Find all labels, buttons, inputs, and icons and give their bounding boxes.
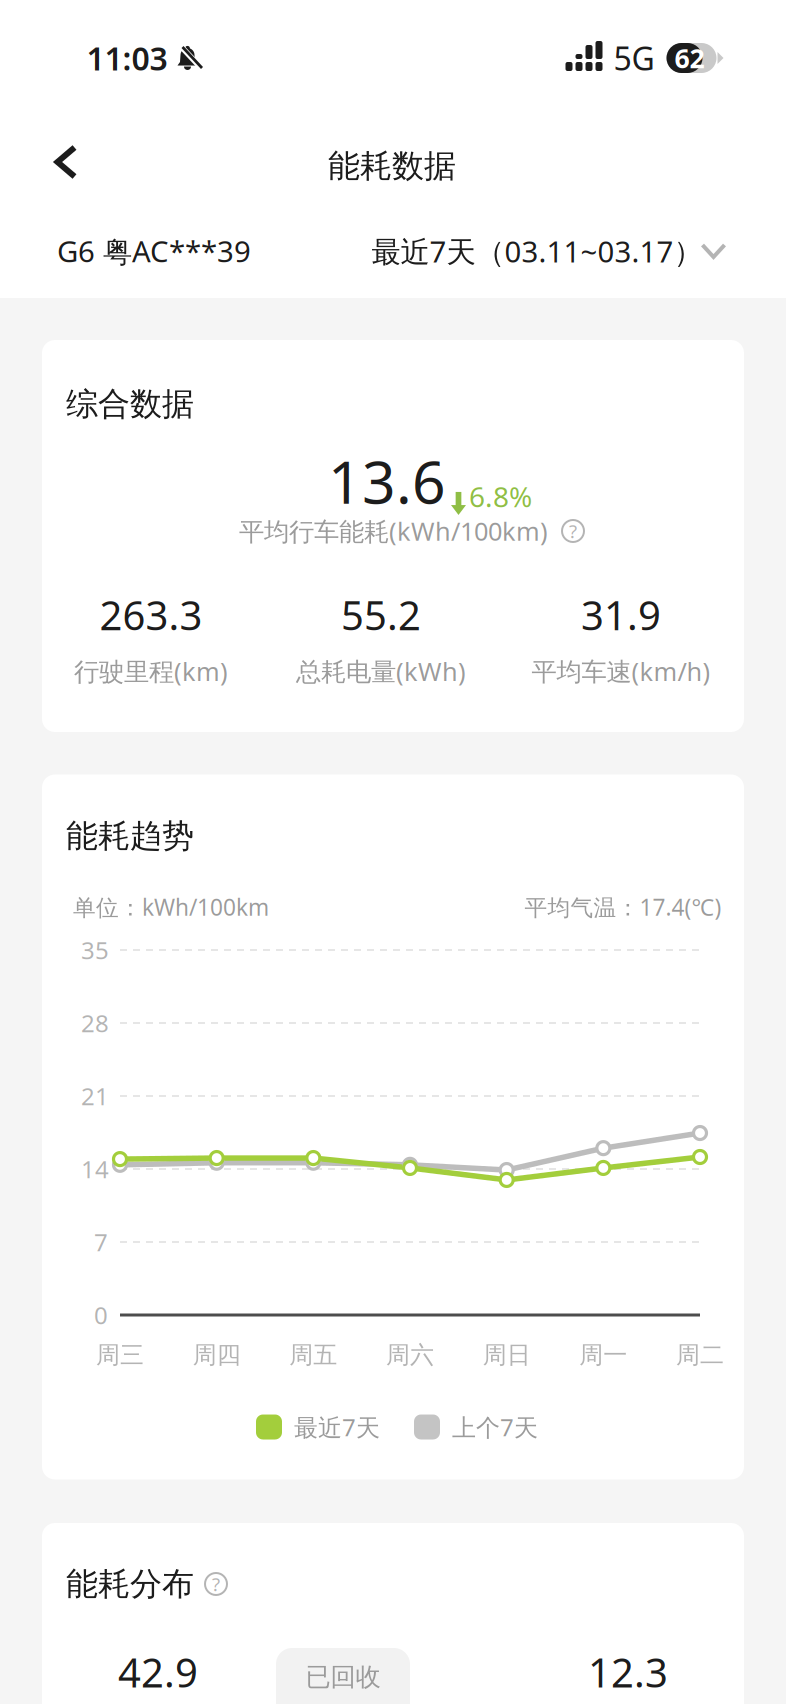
staticText: 11:03: [86, 37, 167, 79]
staticText: 263.3: [99, 588, 202, 641]
button[interactable]: 最近7天: [256, 1403, 380, 1451]
staticText: 21: [81, 1080, 109, 1112]
staticText: 0: [94, 1299, 108, 1331]
button[interactable]: 最近7天（03.11~03.17）: [371, 207, 724, 294]
staticText: 周日: [483, 1340, 531, 1370]
staticText: 42.9: [118, 1645, 198, 1698]
staticText: 12.3: [588, 1645, 668, 1698]
staticText: 平均气温：17.4(℃): [524, 892, 721, 922]
staticText: 能耗趋势: [66, 816, 194, 856]
staticText: 62: [674, 40, 704, 76]
button[interactable]: 关于平均行车能耗: [557, 515, 589, 547]
staticText: 行驶里程(km): [74, 654, 228, 688]
staticText: 上个7天: [452, 1411, 538, 1443]
staticText: 周二: [676, 1340, 724, 1370]
button[interactable]: 返回: [20, 118, 112, 206]
staticText: 31.9: [581, 588, 661, 641]
staticText: G6 粤AC***39: [57, 231, 251, 270]
staticText: 能耗数据: [328, 146, 456, 186]
staticText: 周五: [289, 1340, 337, 1370]
staticText: 6.8%: [469, 478, 532, 515]
staticText: 平均车速(km/h): [531, 654, 710, 688]
staticText: 周六: [386, 1340, 434, 1370]
staticText: 能耗分布: [66, 1564, 194, 1604]
staticText: 周一: [579, 1340, 627, 1370]
staticText: 7: [94, 1226, 108, 1258]
staticText: 55.2: [341, 588, 421, 641]
staticText: 单位：kWh/100km: [73, 892, 269, 922]
staticText: 平均行车能耗(kWh/100km): [239, 514, 548, 548]
staticText: 综合数据: [66, 384, 194, 424]
button[interactable]: G6 粤AC***39: [57, 207, 251, 294]
staticText: 13.6: [328, 442, 446, 520]
button[interactable]: 关于能耗分布: [200, 1568, 232, 1600]
staticText: ?: [569, 519, 577, 543]
staticText: 周三: [96, 1340, 144, 1370]
staticText: 总耗电量(kWh): [296, 654, 466, 688]
staticText: 已回收: [305, 1661, 380, 1692]
staticText: 28: [81, 1007, 109, 1039]
staticText: 周四: [193, 1340, 241, 1370]
staticText: 14: [81, 1153, 109, 1185]
staticText: 5G: [613, 37, 654, 79]
staticText: 最近7天: [294, 1411, 380, 1443]
button[interactable]: 上个7天: [414, 1403, 538, 1451]
staticText: 35: [81, 934, 109, 966]
staticText: ?: [212, 1572, 220, 1596]
staticText: 最近7天（03.11~03.17）: [371, 231, 702, 270]
